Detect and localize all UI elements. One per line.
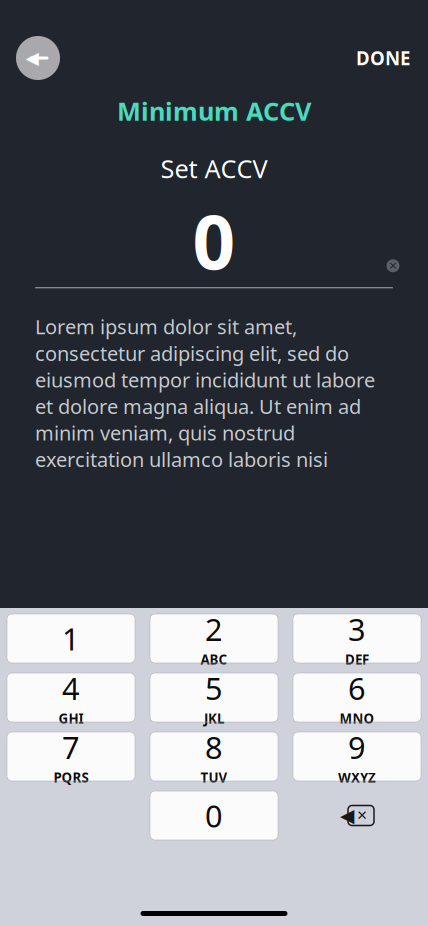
- button[interactable]: 0: [150, 791, 278, 840]
- staticText: Minimum ACCV: [117, 94, 311, 128]
- staticText: 0: [205, 795, 223, 836]
- staticText: MNO: [339, 709, 374, 727]
- button[interactable]: 4: [7, 673, 135, 722]
- button[interactable]: 7: [7, 732, 135, 781]
- button[interactable]: 2: [150, 614, 278, 663]
- staticText: 6: [348, 668, 366, 708]
- button[interactable]: 1: [7, 614, 135, 663]
- staticText: 7: [62, 727, 80, 767]
- staticText: ✕: [356, 808, 367, 823]
- button[interactable]: Clear: [380, 253, 406, 279]
- button[interactable]: Back: [16, 36, 60, 80]
- staticText: Set ACCV: [160, 152, 267, 185]
- staticText: 2: [205, 609, 223, 649]
- staticText: DEF: [345, 650, 369, 668]
- staticText: Lorem ipsum dolor sit amet, consectetur …: [35, 313, 375, 473]
- button[interactable]: 6: [293, 673, 421, 722]
- button[interactable]: DONE: [350, 38, 416, 78]
- staticText: 3: [348, 609, 366, 649]
- staticText: 9: [348, 727, 366, 767]
- staticText: ABC: [200, 650, 227, 668]
- button[interactable]: 3: [293, 614, 421, 663]
- staticText: ✕: [388, 260, 397, 272]
- staticText: 5: [205, 668, 223, 708]
- staticText: 1: [62, 618, 80, 659]
- staticText: WXYZ: [338, 768, 376, 786]
- staticText: ◀: [25, 48, 38, 68]
- staticText: 8: [205, 727, 223, 767]
- staticText: GHI: [58, 709, 83, 727]
- staticText: JKL: [204, 709, 224, 727]
- staticText: PQRS: [53, 768, 88, 786]
- button[interactable]: Delete: [293, 791, 421, 840]
- staticText: 0: [192, 191, 235, 290]
- staticText: 4: [62, 668, 80, 708]
- staticText: ◀: [340, 805, 354, 826]
- staticText: DONE: [356, 46, 410, 70]
- staticText: TUV: [200, 768, 227, 786]
- button[interactable]: 5: [150, 673, 278, 722]
- button[interactable]: 9: [293, 732, 421, 781]
- button[interactable]: 8: [150, 732, 278, 781]
